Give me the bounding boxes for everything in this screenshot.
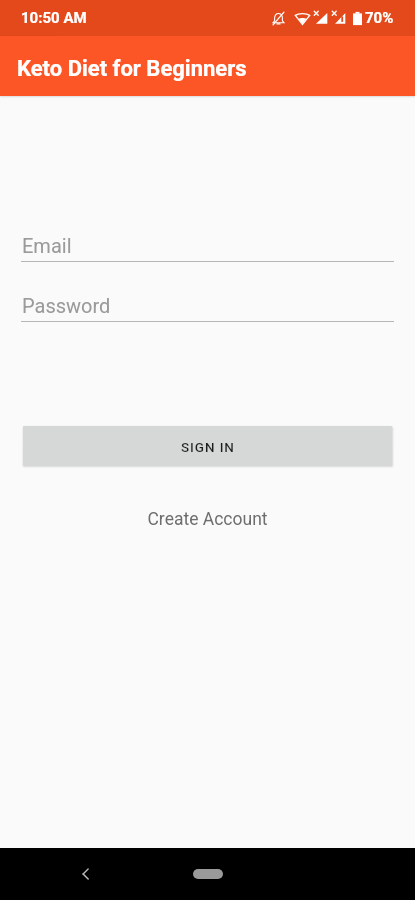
button[interactable]: Email [0, 224, 415, 270]
staticText: SIGN IN [181, 439, 235, 455]
staticText: 70% [365, 9, 394, 27]
staticText: 10:50 AM [21, 9, 87, 27]
staticText: Keto Diet for Beginners [17, 56, 247, 82]
staticText: Create Account [147, 509, 268, 530]
staticText: Password [22, 294, 111, 317]
button[interactable]: SIGN IN [23, 426, 392, 466]
button[interactable]: Create Account [133, 502, 282, 537]
button[interactable]: Back [65, 853, 107, 895]
button[interactable]: Password [0, 284, 415, 330]
staticText: Email [22, 234, 72, 257]
button[interactable]: Home [176, 861, 240, 887]
